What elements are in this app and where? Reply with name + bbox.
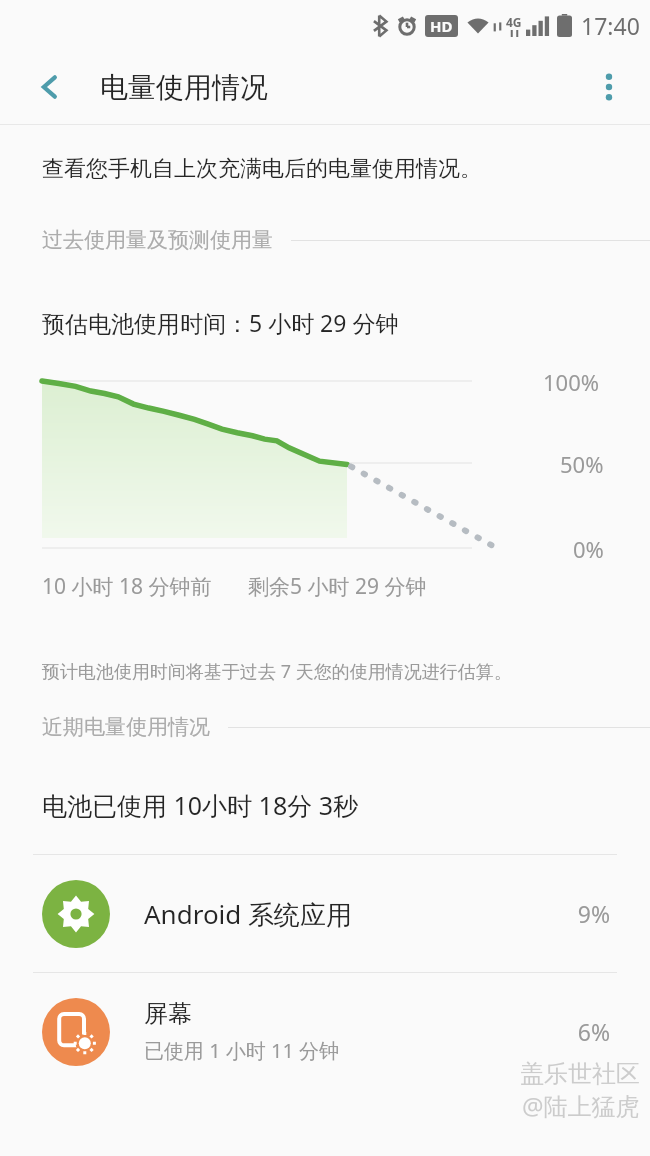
staticText: 17:40 (581, 10, 640, 41)
staticText: Android 系统应用 (144, 896, 353, 932)
staticText: 屏幕 (144, 999, 192, 1029)
staticText: 预计电池使用时间将基于过去 7 天您的使用情况进行估算。 (42, 659, 512, 684)
button[interactable]: Back (28, 65, 72, 109)
staticText: 电量使用情况 (100, 70, 268, 105)
staticText: 过去使用量及预测使用量 (42, 227, 273, 253)
staticText: 6% (577, 1016, 610, 1047)
staticText: 0% (573, 534, 604, 564)
staticText: 10 小时 18 分钟前 (42, 572, 212, 601)
staticText: 查看您手机自上次充满电后的电量使用情况。 (42, 155, 482, 183)
staticText: 4G (506, 14, 522, 30)
staticText: HD (430, 16, 453, 36)
staticText: 盖乐世社区 (520, 1059, 640, 1089)
staticText: @陆上猛虎 (522, 1089, 640, 1122)
button[interactable]: Android 系统应用 (0, 855, 650, 972)
staticText: 近期电量使用情况 (42, 714, 210, 740)
button[interactable]: 屏幕 (0, 973, 650, 1090)
staticText: 电池已使用 10小时 18分 3秒 (42, 788, 359, 822)
staticText: 已使用 1 小时 11 分钟 (144, 1037, 340, 1064)
staticText: 9% (577, 898, 610, 929)
staticText: 100% (543, 367, 600, 397)
staticText: 预估电池使用时间：5 小时 29 分钟 (42, 307, 399, 338)
staticText: 50% (560, 449, 604, 479)
button[interactable]: More options (586, 64, 632, 110)
staticText: 剩余5 小时 29 分钟 (248, 572, 427, 601)
